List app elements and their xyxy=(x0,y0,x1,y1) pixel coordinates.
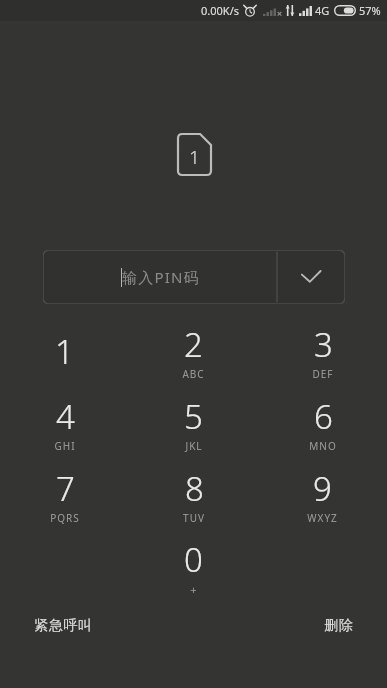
staticText: GHI xyxy=(54,439,76,453)
button[interactable]: 删除 xyxy=(318,609,359,643)
button[interactable]: 输入PIN码 xyxy=(43,250,277,304)
staticText: DEF xyxy=(312,367,334,381)
staticText: 1 xyxy=(189,144,200,170)
staticText: 0.00K/s xyxy=(201,3,239,18)
staticText: 57% xyxy=(359,3,381,18)
button[interactable]: 2 xyxy=(129,318,258,390)
button[interactable]: 8 xyxy=(129,462,258,534)
staticText: WXYZ xyxy=(307,511,338,525)
staticText: 4 xyxy=(56,394,75,439)
staticText: + xyxy=(190,582,198,597)
button[interactable]: Confirm PIN xyxy=(277,250,345,304)
staticText: PQRS xyxy=(50,511,80,525)
staticText: 7 xyxy=(56,466,75,511)
button[interactable]: 3 xyxy=(258,318,387,390)
button[interactable]: 7 xyxy=(0,462,129,534)
staticText: 1 xyxy=(55,329,74,374)
staticText: MNO xyxy=(309,439,337,453)
staticText: 6 xyxy=(314,394,333,439)
button[interactable]: 0 xyxy=(129,534,258,606)
button[interactable]: 9 xyxy=(258,462,387,534)
button[interactable]: 5 xyxy=(129,390,258,462)
staticText: 紧急呼叫 xyxy=(34,617,92,635)
staticText: 删除 xyxy=(324,617,353,635)
staticText: 8 xyxy=(185,466,204,511)
staticText: 2 xyxy=(184,322,203,367)
staticText: JKL xyxy=(185,439,203,453)
button[interactable]: 1 xyxy=(0,318,129,390)
button[interactable]: 4 xyxy=(0,390,129,462)
staticText: 3 xyxy=(314,322,333,367)
staticText: 4G xyxy=(315,3,330,18)
button[interactable]: 紧急呼叫 xyxy=(28,609,98,643)
staticText: 输入PIN码 xyxy=(122,267,200,287)
staticText: ABC xyxy=(182,367,205,381)
staticText: 5 xyxy=(184,394,203,439)
staticText: 0 xyxy=(184,537,203,582)
staticText: TUV xyxy=(183,511,205,525)
staticText: 9 xyxy=(313,466,332,511)
button[interactable]: 6 xyxy=(258,390,387,462)
